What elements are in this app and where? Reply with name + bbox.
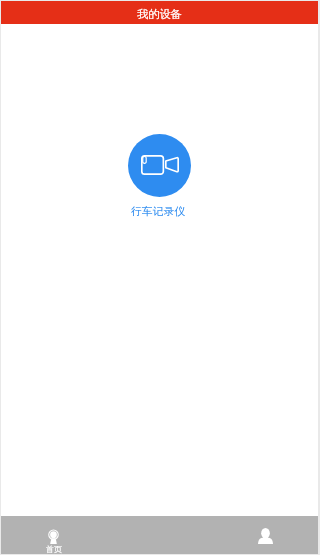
button[interactable]: 首页: [1, 516, 106, 554]
staticText: 我的设备: [137, 7, 182, 21]
staticText: 行车记录仪: [131, 205, 185, 219]
staticText: 首页: [46, 544, 62, 554]
button[interactable]: 行车记录仪: [128, 134, 191, 197]
button[interactable]: 我的: [212, 516, 318, 554]
